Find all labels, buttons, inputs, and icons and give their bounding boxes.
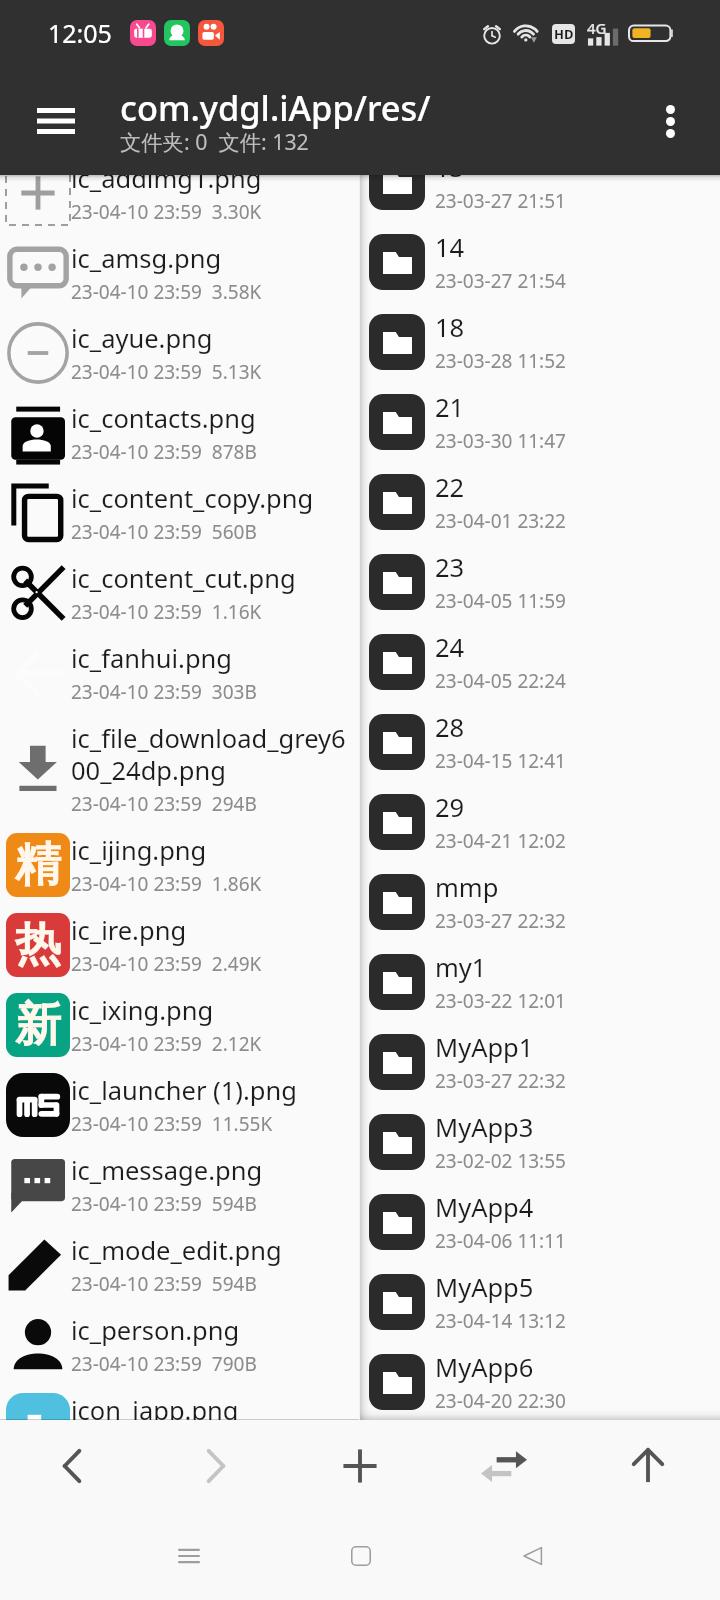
staticText: 23-04-10 23:59 2.12K bbox=[71, 1031, 262, 1057]
staticText: 23-04-10 23:59 1.86K bbox=[71, 871, 262, 897]
staticText: ic_ijing.png bbox=[71, 833, 207, 868]
staticText: 23-04-10 23:59 3.30K bbox=[71, 199, 262, 225]
staticText: HD bbox=[554, 25, 574, 43]
staticText: ic_message.png bbox=[71, 1153, 263, 1188]
button[interactable]: MyApp5 bbox=[359, 1262, 720, 1342]
staticText: 23-04-14 13:12 bbox=[435, 1308, 566, 1334]
button[interactable]: New bbox=[288, 1420, 432, 1512]
button[interactable]: ic_content_cut.png bbox=[0, 553, 359, 633]
staticText: 23-04-10 23:59 594B bbox=[71, 1271, 257, 1297]
staticText: 23-03-22 12:01 bbox=[435, 988, 566, 1014]
staticText: 22 bbox=[435, 470, 465, 505]
staticText: 23-03-27 21:54 bbox=[435, 268, 566, 294]
staticText: mmp bbox=[435, 870, 499, 905]
staticText: 23-04-10 23:59 790B bbox=[71, 1351, 257, 1377]
staticText: ic_ixing.png bbox=[71, 993, 214, 1028]
staticText: 23-04-10 23:59 878B bbox=[71, 439, 257, 465]
staticText: 21 bbox=[435, 390, 465, 425]
staticText: ic_ayue.png bbox=[71, 321, 213, 356]
staticText: 12:05 bbox=[48, 16, 112, 50]
button[interactable]: Recents bbox=[151, 1518, 227, 1594]
button[interactable]: 14 bbox=[359, 222, 720, 302]
staticText: 23-04-10 23:59 3.58K bbox=[71, 279, 262, 305]
staticText: 23-03-28 11:52 bbox=[435, 348, 566, 374]
button[interactable]: 热 bbox=[0, 905, 359, 985]
button[interactable]: MyApp6 bbox=[359, 1342, 720, 1420]
button[interactable]: mmp bbox=[359, 862, 720, 942]
button[interactable]: ic_fanhui.png bbox=[0, 633, 359, 713]
button[interactable]: MyApp4 bbox=[359, 1182, 720, 1262]
staticText: 文件夹: 0 文件: 132 bbox=[120, 127, 309, 156]
button[interactable]: ic_addimg1.png bbox=[0, 175, 359, 233]
button[interactable]: Forward bbox=[144, 1420, 288, 1512]
staticText: MyApp1 bbox=[435, 1030, 534, 1065]
staticText: 23-03-27 22:32 bbox=[435, 1068, 566, 1094]
staticText: 14 bbox=[435, 230, 465, 265]
button[interactable]: 21 bbox=[359, 382, 720, 462]
button[interactable]: MyApp1 bbox=[359, 1022, 720, 1102]
staticText: ic_amsg.png bbox=[71, 241, 222, 276]
button[interactable]: Up bbox=[576, 1420, 720, 1512]
button[interactable]: icon_iapp.png bbox=[0, 1385, 359, 1420]
button[interactable]: 22 bbox=[359, 462, 720, 542]
button[interactable]: MyApp3 bbox=[359, 1102, 720, 1182]
button[interactable]: 28 bbox=[359, 702, 720, 782]
staticText: 23-04-05 11:59 bbox=[435, 588, 566, 614]
button[interactable]: ic_person.png bbox=[0, 1305, 359, 1385]
staticText: 23-04-10 23:59 11.55K bbox=[71, 1111, 273, 1137]
staticText: 23-04-10 23:59 560B bbox=[71, 519, 257, 545]
staticText: 24 bbox=[435, 630, 465, 665]
staticText: 23-04-10 23:59 5.13K bbox=[71, 359, 262, 385]
staticText: MyApp6 bbox=[435, 1350, 534, 1385]
staticText: 23-03-27 22:32 bbox=[435, 908, 566, 934]
button[interactable]: 精 bbox=[0, 825, 359, 905]
staticText: 23-04-10 23:59 1.16K bbox=[71, 599, 262, 625]
button[interactable]: ic_contacts.png bbox=[0, 393, 359, 473]
staticText: 23-04-10 23:59 594B bbox=[71, 1191, 257, 1217]
button[interactable]: 新 bbox=[0, 985, 359, 1065]
staticText: 23-02-02 13:55 bbox=[435, 1148, 566, 1174]
button[interactable]: 23 bbox=[359, 542, 720, 622]
button[interactable]: ic_launcher (1).png bbox=[0, 1065, 359, 1145]
button[interactable]: ic_message.png bbox=[0, 1145, 359, 1225]
button[interactable]: Home bbox=[323, 1518, 399, 1594]
button[interactable]: ic_amsg.png bbox=[0, 233, 359, 313]
staticText: 29 bbox=[435, 790, 465, 825]
button[interactable]: Menu bbox=[20, 85, 92, 157]
staticText: 23-04-21 12:02 bbox=[435, 828, 566, 854]
button[interactable]: ic_mode_edit.png bbox=[0, 1225, 359, 1305]
staticText: 23-04-01 23:22 bbox=[435, 508, 566, 534]
staticText: 13 bbox=[435, 175, 465, 185]
staticText: MyApp5 bbox=[435, 1270, 534, 1305]
button[interactable]: 24 bbox=[359, 622, 720, 702]
button[interactable]: 29 bbox=[359, 782, 720, 862]
staticText: icon_iapp.png bbox=[71, 1393, 239, 1420]
button[interactable]: Back bbox=[495, 1518, 571, 1594]
staticText: 28 bbox=[435, 710, 465, 745]
staticText: 23-04-10 23:59 2.49K bbox=[71, 951, 262, 977]
staticText: 23-04-10 23:59 303B bbox=[71, 679, 257, 705]
staticText: 热 bbox=[15, 916, 61, 974]
staticText: 18 bbox=[435, 310, 465, 345]
staticText: 23-04-05 22:24 bbox=[435, 668, 566, 694]
staticText: 23 bbox=[435, 550, 465, 585]
staticText: MyApp3 bbox=[435, 1110, 534, 1145]
staticText: ic_person.png bbox=[71, 1313, 240, 1348]
staticText: 新 bbox=[15, 996, 61, 1054]
staticText: ic_ire.png bbox=[71, 913, 187, 948]
button[interactable]: Back bbox=[0, 1420, 144, 1512]
button[interactable]: Swap panes bbox=[432, 1420, 576, 1512]
staticText: 23-04-10 23:59 294B bbox=[71, 791, 257, 817]
button[interactable]: ic_file_download_grey600_24dp.png bbox=[0, 713, 359, 825]
staticText: 23-04-20 22:30 bbox=[435, 1388, 566, 1414]
button[interactable]: ic_ayue.png bbox=[0, 313, 359, 393]
button[interactable]: 18 bbox=[359, 302, 720, 382]
staticText: ic_file_download_grey600_24dp.png bbox=[71, 721, 352, 788]
staticText: com.ydgl.iApp/res/ bbox=[120, 84, 431, 131]
staticText: ic_contacts.png bbox=[71, 401, 256, 436]
staticText: 精 bbox=[15, 836, 61, 894]
button[interactable]: More options bbox=[634, 85, 706, 157]
button[interactable]: 13 bbox=[359, 175, 720, 222]
button[interactable]: my1 bbox=[359, 942, 720, 1022]
button[interactable]: ic_content_copy.png bbox=[0, 473, 359, 553]
